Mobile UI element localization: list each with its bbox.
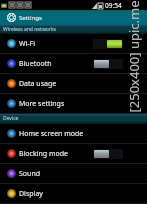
button[interactable]: Switch on — [93, 39, 123, 49]
staticText: Wi-Fi — [19, 39, 36, 49]
staticText: 09:54 — [105, 1, 122, 10]
staticText: Bluetooth — [19, 59, 52, 69]
button[interactable]: Blocking mode — [0, 144, 147, 163]
staticText: Home screen mode — [19, 129, 84, 139]
staticText: Device — [3, 115, 19, 122]
button[interactable]: More settings — [0, 94, 147, 113]
other: Settings — [7, 13, 16, 22]
button[interactable]: Bluetooth — [0, 54, 147, 73]
staticText: Blocking mode — [19, 149, 68, 159]
button[interactable]: Display — [0, 184, 147, 203]
staticText: Settings — [19, 14, 42, 22]
staticText: Wireless and networks — [3, 26, 56, 33]
button[interactable]: Wi-Fi — [0, 34, 147, 53]
staticText: [250x400] upic.me — [124, 0, 142, 112]
button[interactable]: Switch off — [93, 59, 123, 69]
button[interactable]: Sound — [0, 164, 147, 183]
staticText: More settings — [19, 99, 65, 109]
staticText: Display — [19, 189, 43, 199]
button[interactable]: Switch off — [93, 149, 123, 159]
button[interactable]: Data usage — [0, 74, 147, 93]
button[interactable]: Settings — [0, 10, 147, 25]
staticText: Sound — [19, 169, 41, 179]
button[interactable]: Home screen mode — [0, 124, 147, 143]
staticText: Data usage — [19, 79, 57, 89]
